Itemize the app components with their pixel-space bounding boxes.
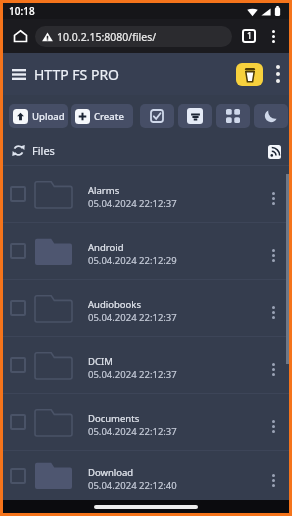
staticText: 05.04.2024 22:12:40 <box>88 479 177 492</box>
staticText: Android <box>88 241 124 254</box>
staticText: 10:18 <box>9 4 35 18</box>
button[interactable]: Item options <box>264 189 282 207</box>
button[interactable]: Alarms <box>3 166 289 222</box>
staticText: HTTP FS PRO <box>34 65 120 84</box>
button[interactable]: Item options <box>264 471 282 489</box>
staticText: Create <box>94 110 124 123</box>
staticText: 05.04.2024 22:12:37 <box>88 425 177 438</box>
button[interactable]: Audiobooks <box>3 280 289 336</box>
button[interactable]: Buy me a coffee <box>236 63 263 86</box>
button[interactable]: WebDAV feed <box>268 145 281 159</box>
button[interactable]: Create <box>71 104 133 128</box>
button[interactable]: Browser menu <box>262 25 284 47</box>
button[interactable]: Toggle dark mode <box>254 104 288 128</box>
button[interactable]: Android <box>3 223 289 279</box>
button[interactable]: Documents <box>3 394 289 450</box>
button[interactable]: Item options <box>264 246 282 264</box>
button[interactable]: Navigation menu <box>9 64 29 84</box>
staticText: 05.04.2024 22:12:37 <box>88 368 177 381</box>
staticText: Files <box>32 143 55 158</box>
button[interactable]: Upload <box>9 104 68 128</box>
button[interactable]: Home <box>8 24 32 48</box>
staticText: Audiobooks <box>88 298 141 311</box>
button[interactable]: Sort <box>178 104 212 128</box>
staticText: 10.0.2.15:8080/files/ <box>57 30 157 44</box>
button[interactable]: App menu <box>269 65 287 83</box>
staticText: Download <box>88 466 134 479</box>
button[interactable]: Grid view <box>216 104 250 128</box>
staticText: Documents <box>88 412 140 425</box>
button[interactable]: 10.0.2.15:8080/files/ <box>35 26 232 47</box>
staticText: 1 <box>247 30 252 42</box>
button[interactable]: DCIM <box>3 337 289 393</box>
staticText: 05.04.2024 22:12:29 <box>88 254 177 267</box>
staticText: 05.04.2024 22:12:37 <box>88 197 177 210</box>
staticText: Upload <box>32 110 65 123</box>
button[interactable]: Item options <box>264 417 282 435</box>
button[interactable]: Download <box>3 451 289 500</box>
button[interactable]: Select all <box>140 104 174 128</box>
staticText: DCIM <box>88 355 113 368</box>
button[interactable]: Item options <box>264 303 282 321</box>
staticText: 05.04.2024 22:12:37 <box>88 311 177 324</box>
button[interactable]: Tabs <box>238 25 260 47</box>
button[interactable]: Item options <box>264 360 282 378</box>
staticText: Alarms <box>88 184 120 197</box>
